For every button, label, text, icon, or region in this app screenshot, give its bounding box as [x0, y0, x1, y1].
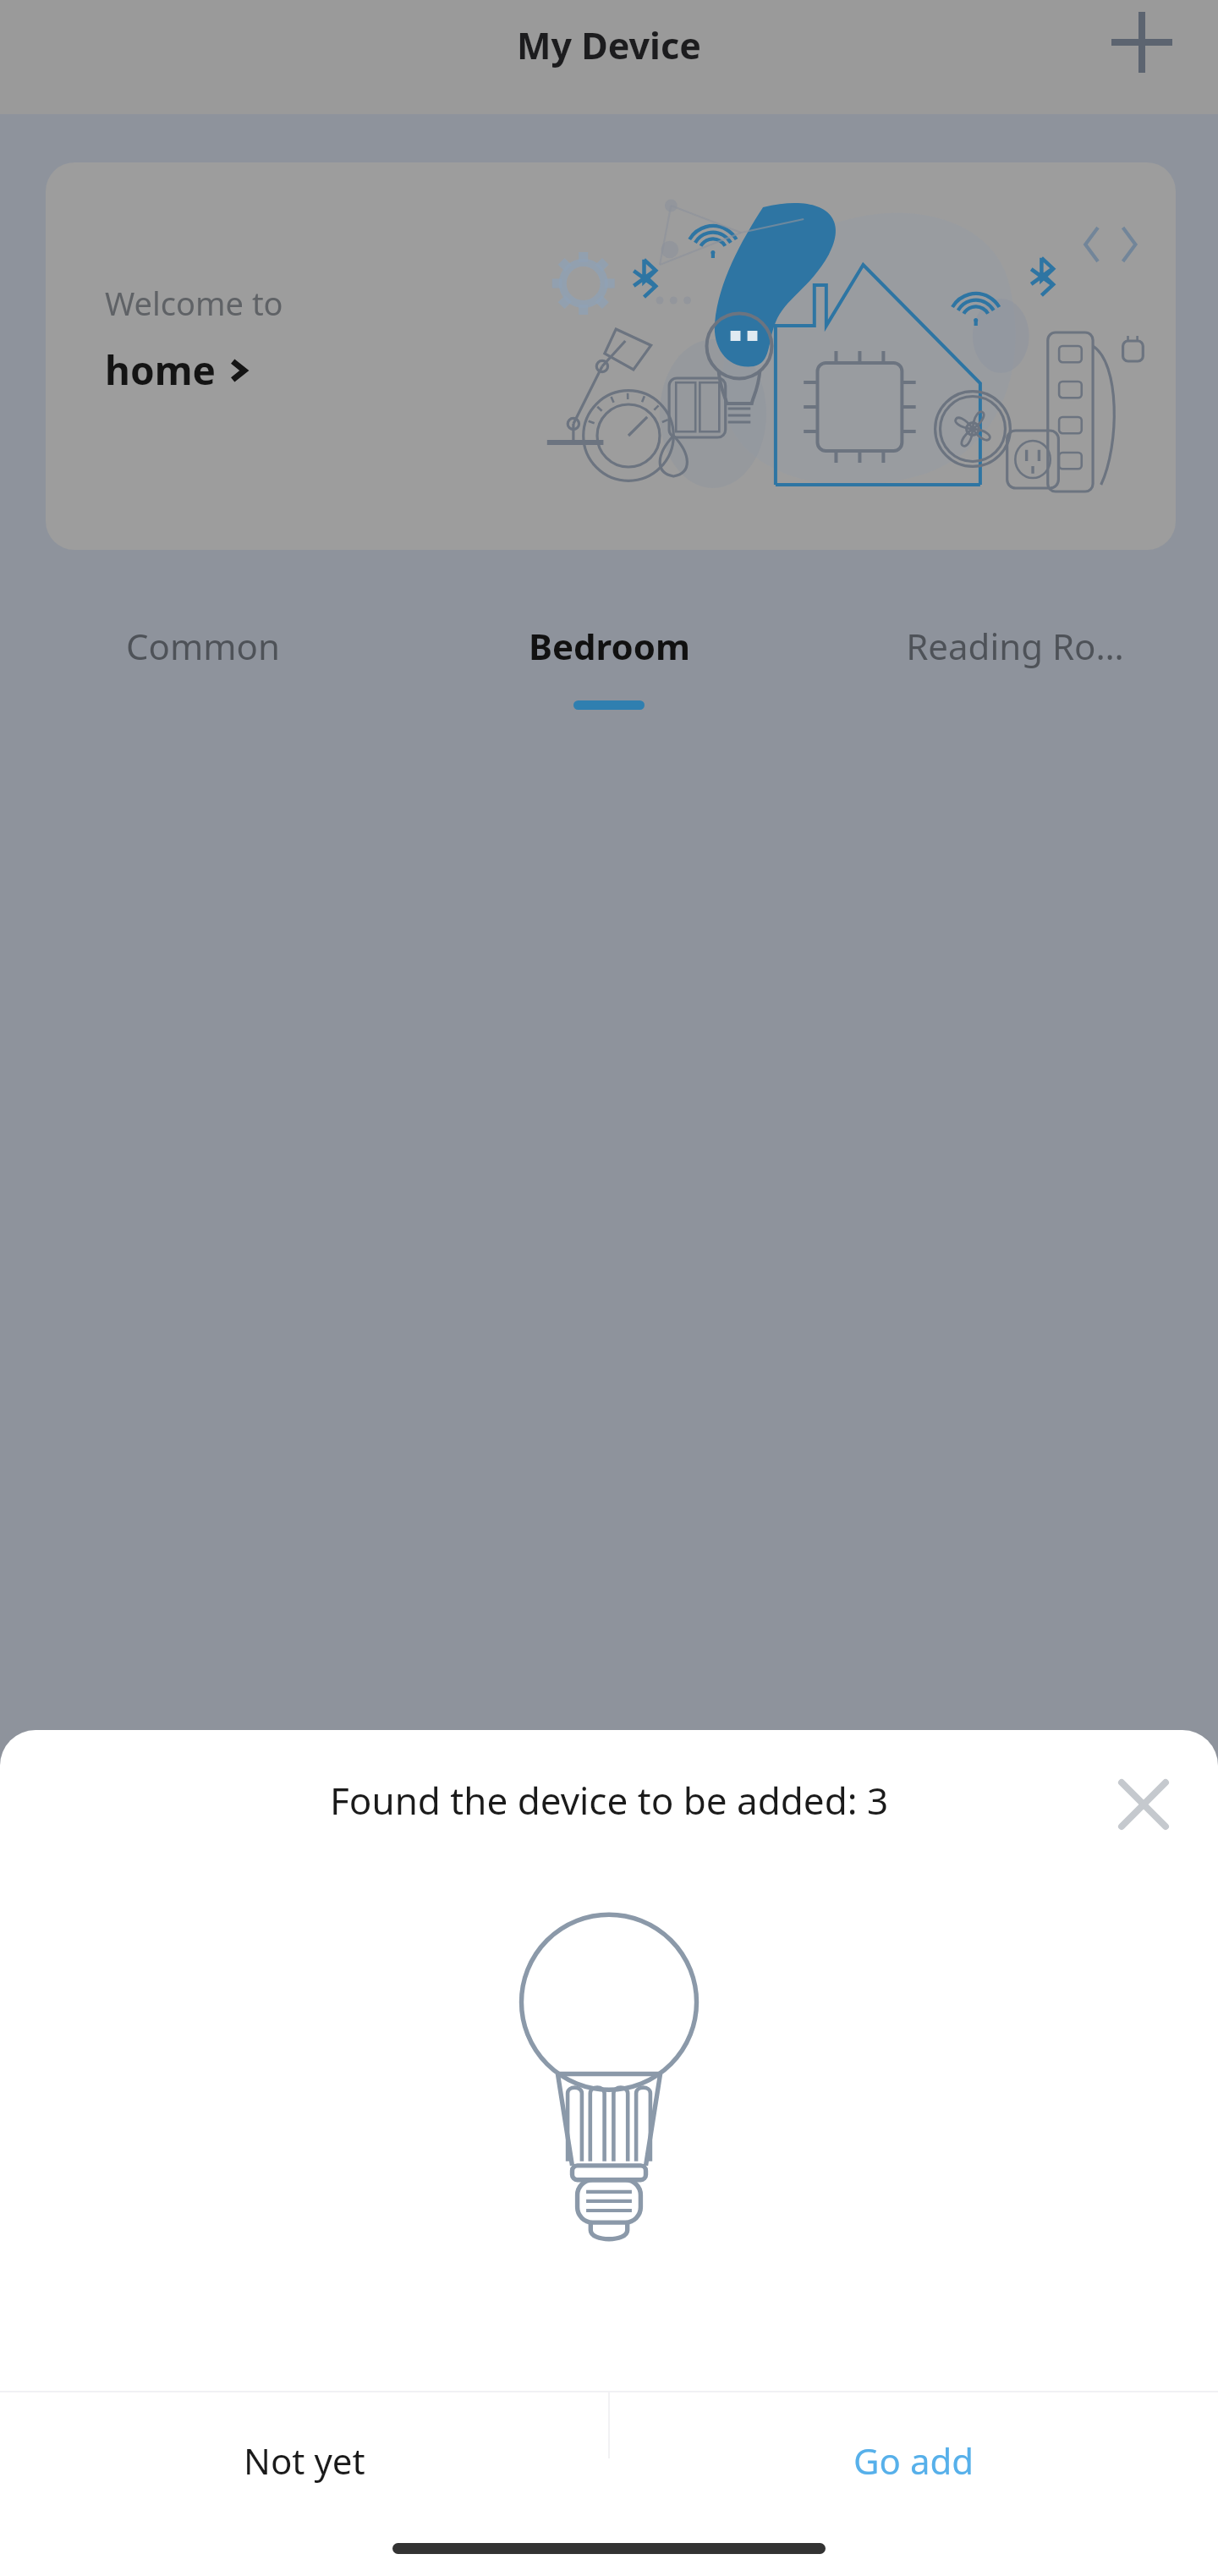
staticText: Welcome to [105, 281, 283, 325]
staticText: Not yet [244, 2436, 365, 2485]
staticText: Reading Ro… [906, 622, 1124, 670]
staticText: home [105, 343, 216, 397]
button[interactable]: Go add [609, 2392, 1218, 2528]
staticText: Go add [853, 2436, 974, 2485]
button[interactable]: Not yet [0, 2392, 609, 2528]
staticText: Bedroom [529, 622, 690, 670]
button[interactable]: Welcome to [46, 162, 1176, 550]
staticText: My Device [517, 20, 701, 70]
staticText: Found the device to be added: 3 [330, 1775, 889, 1826]
staticText: Common [126, 622, 280, 670]
button[interactable]: Reading Ro… [812, 601, 1218, 728]
button[interactable]: Common [0, 601, 406, 728]
button[interactable]: Add device [1101, 2, 1182, 83]
button[interactable]: Close [1105, 1766, 1182, 1843]
button[interactable]: Bedroom [406, 601, 812, 728]
